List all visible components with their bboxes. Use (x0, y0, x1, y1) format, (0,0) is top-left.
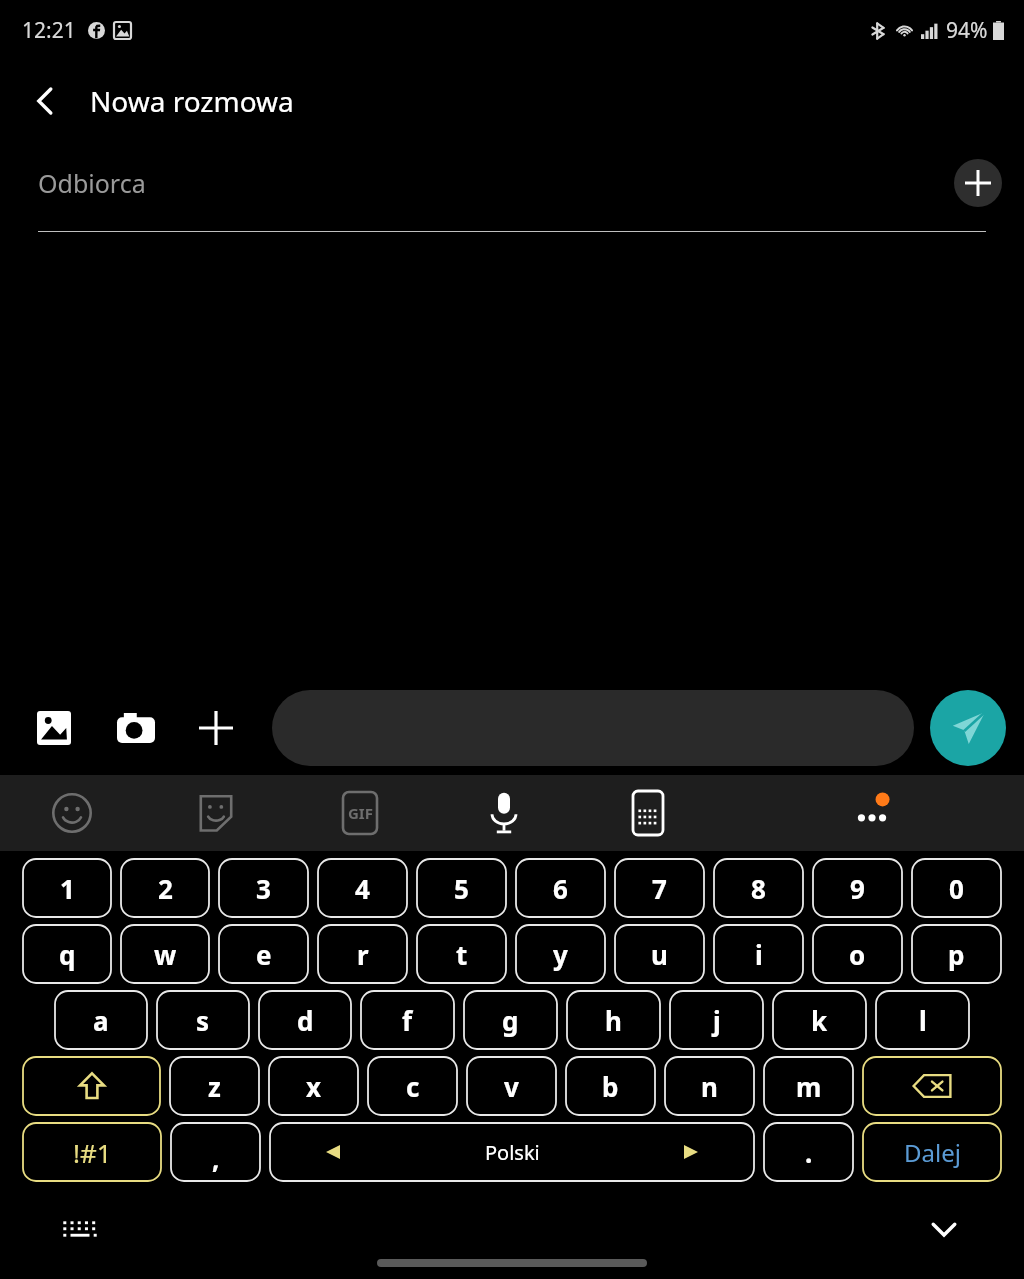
button[interactable]: f (361, 991, 454, 1049)
staticText: j (713, 1003, 721, 1038)
button[interactable]: Backspace (863, 1057, 1001, 1115)
staticText: Polski (485, 1139, 540, 1166)
button[interactable]: 5 (417, 859, 506, 917)
staticText: 9 (850, 871, 865, 906)
button[interactable]: 2 (121, 859, 209, 917)
staticText: o (849, 937, 866, 972)
staticText: 2 (158, 871, 173, 906)
button[interactable]: k (773, 991, 866, 1049)
staticText: b (602, 1069, 619, 1104)
button[interactable]: Voice input (432, 775, 576, 851)
button[interactable]: u (615, 925, 704, 983)
staticText: 1 (60, 871, 75, 906)
button[interactable]: b (566, 1057, 655, 1115)
staticText: q (59, 937, 76, 972)
button[interactable]: Shift (23, 1057, 160, 1115)
button[interactable]: s (157, 991, 249, 1049)
staticText: z (208, 1069, 221, 1104)
button[interactable]: d (259, 991, 351, 1049)
staticText: 7 (652, 871, 667, 906)
button[interactable]: Back (18, 73, 74, 129)
staticText: a (93, 1003, 109, 1038)
button[interactable]: w (121, 925, 209, 983)
staticText: i (755, 937, 763, 972)
button[interactable]: Attach image (28, 702, 80, 754)
button[interactable]: t (417, 925, 506, 983)
staticText: k (811, 1003, 828, 1038)
button[interactable]: Hide keyboard (920, 1205, 968, 1253)
button[interactable]: 0 (912, 859, 1001, 917)
button[interactable]: c (368, 1057, 457, 1115)
staticText: GIF (348, 803, 373, 823)
button[interactable]: Emoji (0, 775, 144, 851)
button[interactable]: g (464, 991, 557, 1049)
staticText: g (502, 1003, 519, 1038)
button[interactable]: a (55, 991, 147, 1049)
button[interactable]: Add recipient (954, 159, 1002, 207)
button[interactable]: n (665, 1057, 754, 1115)
button[interactable]: h (567, 991, 660, 1049)
staticText: x (306, 1069, 322, 1104)
button[interactable]: GIF (288, 775, 432, 851)
staticText: t (456, 937, 468, 972)
button[interactable]: p (912, 925, 1001, 983)
button[interactable]: Period (764, 1123, 853, 1181)
button[interactable]: Comma (171, 1123, 260, 1181)
staticText: , (212, 1141, 220, 1176)
button[interactable]: Stickers (144, 775, 288, 851)
staticText: 3 (256, 871, 271, 906)
staticText: v (504, 1069, 519, 1104)
button[interactable]: Symbols (23, 1123, 161, 1181)
button[interactable]: o (813, 925, 902, 983)
button[interactable]: 3 (219, 859, 308, 917)
button[interactable]: y (516, 925, 605, 983)
staticText: y (553, 937, 568, 972)
button[interactable]: 4 (318, 859, 407, 917)
staticText: u (651, 937, 668, 972)
button[interactable]: q (23, 925, 111, 983)
staticText: h (605, 1003, 622, 1038)
button[interactable]: v (467, 1057, 556, 1115)
button[interactable]: Keyboard layout (56, 1205, 104, 1253)
staticText: Dalej (904, 1136, 961, 1169)
staticText: m (796, 1069, 822, 1104)
staticText: 4 (355, 871, 370, 906)
staticText: r (357, 937, 369, 972)
staticText: Nowa rozmowa (90, 82, 294, 120)
button[interactable]: Camera (110, 702, 162, 754)
staticText: Odbiorca (38, 166, 146, 200)
staticText: l (919, 1003, 927, 1038)
button[interactable]: 1 (23, 859, 111, 917)
button[interactable]: z (170, 1057, 259, 1115)
button[interactable]: i (714, 925, 803, 983)
staticText: 0 (949, 871, 964, 906)
staticText: !#1 (73, 1135, 112, 1170)
button[interactable]: Next (863, 1123, 1001, 1181)
button[interactable]: 8 (714, 859, 803, 917)
staticText: w (154, 937, 177, 972)
button[interactable]: e (219, 925, 308, 983)
button[interactable]: Space (270, 1123, 754, 1181)
button[interactable]: r (318, 925, 407, 983)
button[interactable] (272, 690, 914, 766)
button[interactable]: j (670, 991, 763, 1049)
button[interactable]: x (269, 1057, 358, 1115)
staticText: d (297, 1003, 314, 1038)
button[interactable]: l (876, 991, 969, 1049)
staticText: 94% (946, 16, 988, 45)
staticText: 6 (553, 871, 568, 906)
staticText: p (948, 937, 965, 972)
button[interactable]: m (764, 1057, 853, 1115)
staticText: c (406, 1069, 420, 1104)
button[interactable]: More options (190, 702, 242, 754)
button[interactable]: 7 (615, 859, 704, 917)
staticText: e (256, 937, 272, 972)
button[interactable]: Keyboard settings (576, 775, 720, 851)
staticText: 5 (454, 871, 469, 906)
button[interactable]: 6 (516, 859, 605, 917)
staticText: n (701, 1069, 718, 1104)
button[interactable]: More (720, 775, 1024, 851)
staticText: 8 (751, 871, 766, 906)
button[interactable]: 9 (813, 859, 902, 917)
button[interactable]: Send (930, 690, 1006, 766)
